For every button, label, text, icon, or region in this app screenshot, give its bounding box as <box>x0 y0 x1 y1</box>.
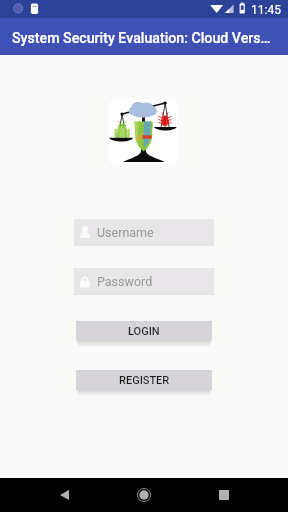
button[interactable]: Back <box>40 478 88 512</box>
button[interactable]: LOGIN <box>76 321 212 341</box>
staticText: System Security Evaluation: Cloud Versio… <box>12 30 274 47</box>
button[interactable]: Username <box>74 219 214 246</box>
staticText: 11:45 <box>251 3 281 17</box>
button[interactable]: Recents <box>200 478 248 512</box>
staticText: Password <box>97 274 153 289</box>
staticText: Username <box>97 225 154 240</box>
button[interactable]: Password <box>74 268 214 295</box>
staticText: LOGIN <box>128 325 160 338</box>
staticText: REGISTER <box>119 374 170 387</box>
button[interactable]: REGISTER <box>76 370 212 390</box>
button[interactable]: Home <box>120 478 168 512</box>
